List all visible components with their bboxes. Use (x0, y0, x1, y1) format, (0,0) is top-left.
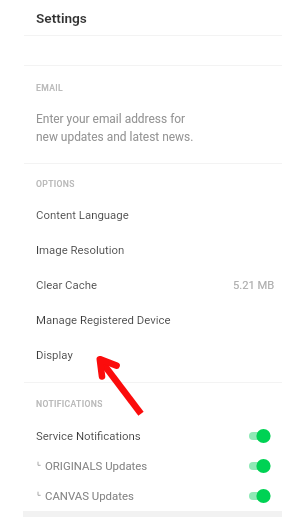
button[interactable]: Image Resolution (0, 232, 282, 267)
button[interactable]: Toggle ORIGINALS Updates (243, 454, 277, 478)
button[interactable]: Toggle Service Notifications (243, 424, 277, 448)
button[interactable]: Manage Registered Device (0, 302, 282, 337)
staticText: CANVAS Updates (45, 489, 134, 502)
staticText: Service Notifications (36, 429, 141, 442)
button[interactable]: Toggle CANVAS Updates (243, 484, 277, 508)
staticText: 5.21 MB (233, 279, 275, 292)
button[interactable]: ORIGINALS Updates (0, 450, 282, 480)
staticText: Enter your email address for new updates… (36, 112, 194, 144)
button[interactable]: Service Notifications (0, 420, 282, 450)
staticText: Display (36, 348, 73, 361)
button[interactable]: Display (0, 337, 282, 372)
staticText: Clear Cache (36, 278, 97, 291)
staticText: OPTIONS (36, 179, 75, 189)
staticText: Image Resolution (36, 243, 125, 256)
staticText: Settings (36, 10, 87, 26)
staticText: Content Language (36, 208, 129, 221)
staticText: NOTIFICATIONS (36, 399, 103, 409)
button[interactable]: Clear Cache (0, 267, 282, 302)
staticText: ORIGINALS Updates (45, 459, 148, 472)
staticText: EMAIL (36, 83, 64, 93)
button[interactable]: Content Language (0, 197, 282, 232)
button[interactable]: CANVAS Updates (0, 480, 282, 510)
staticText: Manage Registered Device (36, 313, 171, 326)
